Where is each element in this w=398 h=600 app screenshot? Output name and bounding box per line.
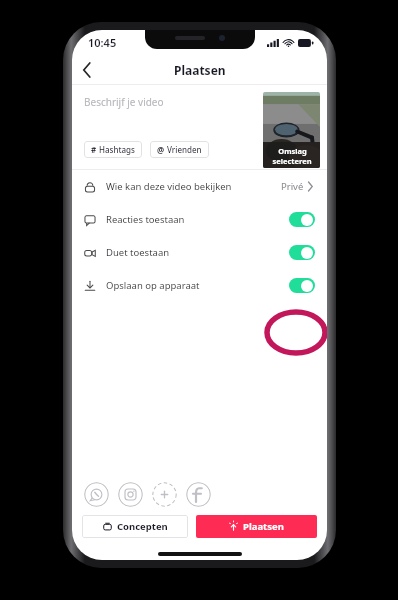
button[interactable]: Wie kan deze video bekijken xyxy=(72,170,327,203)
staticText: Privé xyxy=(281,180,304,193)
staticText: Vrienden xyxy=(167,144,202,155)
staticText: Concepten xyxy=(117,520,168,533)
button[interactable]: Toggle xyxy=(289,245,315,260)
staticText: # xyxy=(91,144,97,155)
staticText: Reacties toestaan xyxy=(106,213,185,226)
button[interactable]: More sharing options xyxy=(152,482,177,507)
staticText: selecteren xyxy=(272,156,312,166)
button[interactable]: Duet toestaan xyxy=(72,236,327,269)
staticText: Hashtags xyxy=(99,144,135,155)
button[interactable]: Toggle xyxy=(289,212,315,227)
button[interactable]: Back xyxy=(72,55,102,84)
button[interactable]: Concepten xyxy=(82,515,188,538)
staticText: Omslag xyxy=(278,146,307,156)
staticText: @ xyxy=(157,144,165,155)
button[interactable]: Share to Facebook xyxy=(186,482,211,507)
button[interactable]: # xyxy=(84,141,142,158)
button[interactable]: Share to Instagram xyxy=(118,482,143,507)
staticText: 10:45 xyxy=(88,35,117,50)
staticText: Plaatsen xyxy=(174,62,226,78)
button[interactable]: @ xyxy=(150,141,209,158)
button[interactable]: Plaatsen xyxy=(196,515,317,538)
staticText: Wie kan deze video bekijken xyxy=(106,180,232,193)
staticText: Duet toestaan xyxy=(106,246,170,259)
button[interactable]: Reacties toestaan xyxy=(72,203,327,236)
staticText: Plaatsen xyxy=(243,520,284,533)
staticText: Beschrijf je video xyxy=(84,95,164,109)
staticText: Opslaan op apparaat xyxy=(106,279,200,292)
button[interactable]: Omslag selecteren xyxy=(263,92,320,168)
button[interactable]: Opslaan op apparaat xyxy=(72,269,327,302)
button[interactable]: Share to WhatsApp xyxy=(84,482,109,507)
button[interactable]: Toggle xyxy=(289,278,315,293)
